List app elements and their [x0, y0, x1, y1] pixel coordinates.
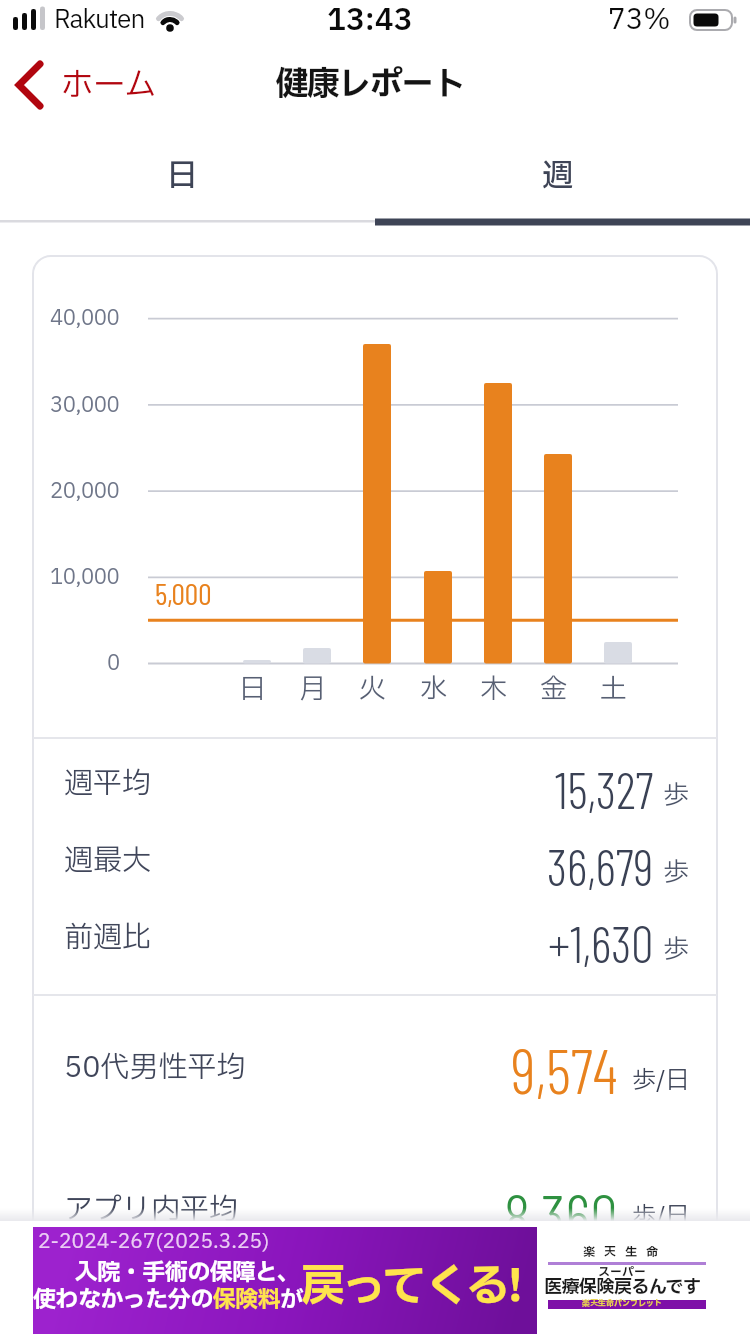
- staticText: 歩/日: [632, 1063, 690, 1099]
- staticText: 医療保険戻るんです: [544, 1274, 701, 1301]
- staticText: 2-2024-267(2025.3.25): [38, 1227, 270, 1257]
- staticText: 歩: [663, 853, 690, 892]
- button[interactable]: [8, 55, 168, 115]
- staticText: 土: [600, 669, 627, 709]
- staticText: 9,574: [511, 1032, 618, 1106]
- staticText: 40,000: [50, 303, 120, 334]
- staticText: 10,000: [50, 562, 120, 593]
- staticText: 週平均: [64, 762, 152, 805]
- staticText: 0: [107, 648, 120, 679]
- staticText: 50代男性平均: [64, 1046, 246, 1089]
- staticText: アプリ内平均: [64, 1188, 239, 1231]
- button[interactable]: [33, 1227, 537, 1334]
- staticText: 火: [359, 669, 386, 709]
- staticText: 36,679: [547, 836, 654, 896]
- staticText: ホーム: [61, 61, 156, 110]
- staticText: 健康レポート: [276, 60, 465, 109]
- staticText: 使わなかった分の保険料が: [33, 1283, 303, 1317]
- button[interactable]: [375, 140, 750, 226]
- staticText: 楽 天 生 命: [583, 1243, 661, 1261]
- staticText: 週: [542, 153, 573, 199]
- staticText: 月: [299, 669, 326, 709]
- staticText: 金: [540, 669, 567, 709]
- staticText: 8,360: [504, 1178, 618, 1252]
- staticText: 水: [420, 669, 447, 709]
- staticText: 30,000: [50, 390, 120, 421]
- staticText: 歩/日: [632, 1199, 690, 1235]
- staticText: 木: [480, 669, 507, 709]
- staticText: 日: [167, 153, 198, 199]
- staticText: 入院・手術の保障と、: [75, 1256, 300, 1290]
- staticText: 歩: [663, 930, 690, 969]
- staticText: 15,327: [555, 759, 654, 819]
- staticText: 日: [239, 669, 266, 709]
- staticText: 戻ってくる!: [301, 1254, 521, 1320]
- staticText: Rakuten: [54, 2, 145, 39]
- staticText: 5,000: [155, 575, 212, 611]
- staticText: スーパー: [598, 1263, 647, 1281]
- staticText: 楽天生命パンフレット: [582, 1298, 662, 1310]
- staticText: 歩: [663, 776, 690, 815]
- staticText: 週最大: [64, 839, 152, 882]
- staticText: 前週比: [64, 916, 152, 959]
- staticText: +1,630: [548, 913, 654, 973]
- staticText: 20,000: [50, 476, 120, 507]
- staticText: 73%: [608, 0, 671, 41]
- button[interactable]: [0, 140, 375, 226]
- staticText: 13:43: [327, 0, 413, 43]
